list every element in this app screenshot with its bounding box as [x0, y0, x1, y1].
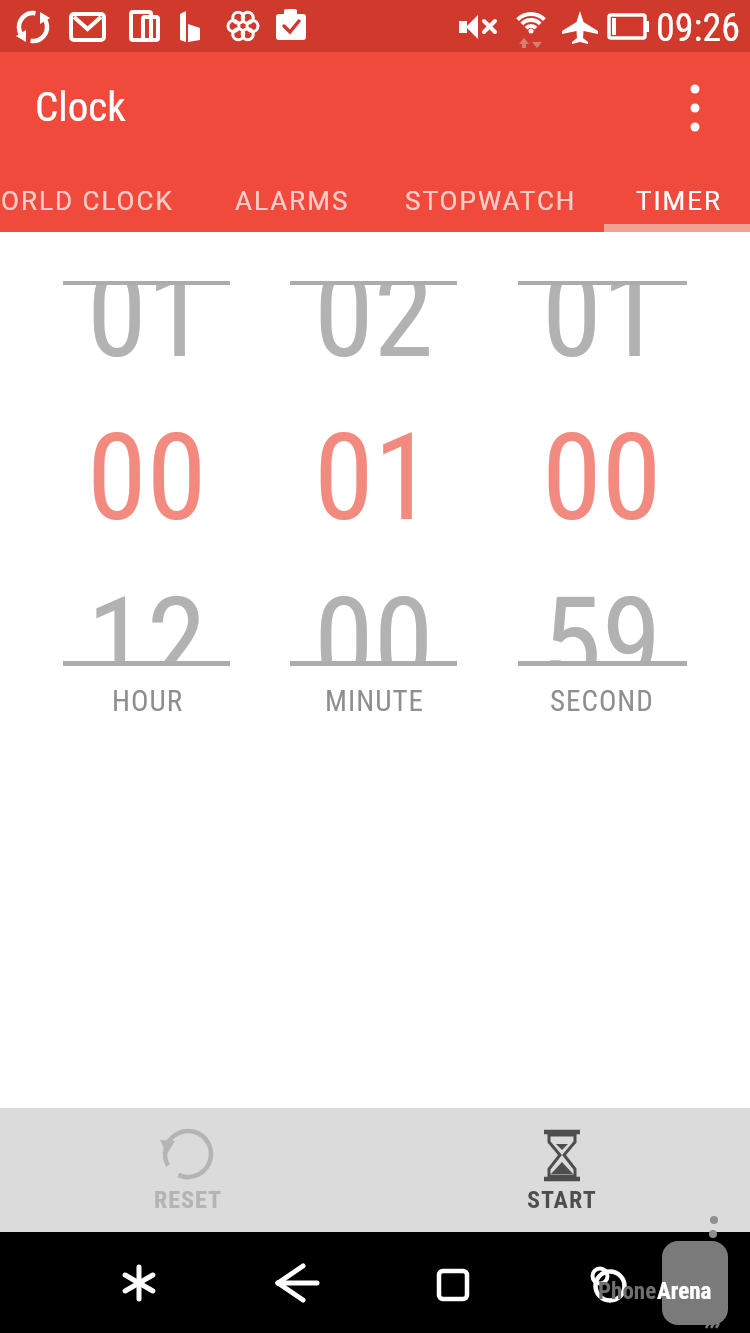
staticText: MINUTE: [325, 684, 424, 716]
staticText: STOPWATCH: [405, 186, 577, 216]
button[interactable]: RESET: [108, 1108, 268, 1232]
staticText: Clock: [35, 83, 126, 131]
staticText: 01: [314, 407, 434, 549]
button[interactable]: [512, 282, 692, 665]
button[interactable]: [89, 1232, 189, 1333]
staticText: WORLD CLOCK: [0, 186, 174, 216]
staticText: Phone: [598, 1278, 657, 1305]
staticText: 59: [542, 571, 662, 666]
staticText: 02: [314, 282, 434, 386]
button[interactable]: [57, 282, 237, 665]
button[interactable]: [655, 52, 735, 170]
staticText: 01: [542, 282, 662, 386]
button[interactable]: STOPWATCH: [361, 170, 621, 232]
button[interactable]: TIMER: [549, 170, 750, 232]
button[interactable]: [558, 1232, 658, 1333]
staticText: 12: [87, 571, 207, 666]
staticText: 00: [314, 571, 434, 666]
button[interactable]: WORLD CLOCK: [0, 170, 205, 232]
button[interactable]: START: [482, 1108, 642, 1232]
staticText: ALARMS: [235, 186, 350, 216]
button[interactable]: [243, 1232, 343, 1333]
staticText: HOUR: [112, 684, 184, 716]
staticText: Arena: [657, 1278, 712, 1305]
staticText: 00: [87, 407, 207, 549]
staticText: TIMER: [636, 186, 723, 216]
staticText: START: [527, 1186, 597, 1214]
staticText: SECOND: [550, 684, 654, 716]
staticText: 09:26: [656, 6, 740, 51]
button[interactable]: ALARMS: [162, 170, 422, 232]
staticText: 01: [87, 282, 207, 386]
staticText: RESET: [154, 1186, 223, 1214]
button[interactable]: [403, 1232, 503, 1333]
button[interactable]: [284, 282, 464, 665]
staticText: 00: [542, 407, 662, 549]
